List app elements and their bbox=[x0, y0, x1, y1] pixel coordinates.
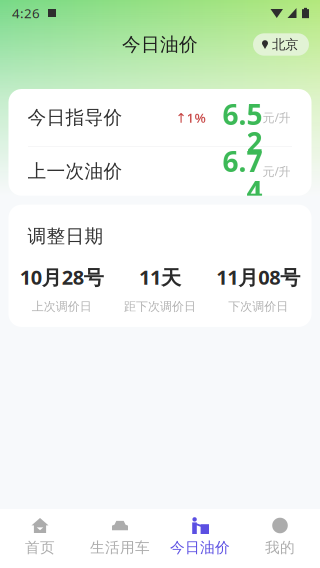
staticText: 6.7 bbox=[222, 142, 262, 180]
staticText: 首页 bbox=[25, 538, 55, 556]
staticText: 北京 bbox=[272, 36, 298, 53]
staticText: 上一次油价 bbox=[27, 160, 122, 183]
staticText: 下次调价日 bbox=[228, 299, 288, 314]
staticText: 元/升 bbox=[262, 163, 290, 179]
staticText: 11月08号 bbox=[216, 264, 300, 290]
staticText: 今日油价 bbox=[122, 33, 198, 56]
staticText: 生活用车 bbox=[90, 538, 150, 556]
staticText: 今日指导价 bbox=[27, 106, 122, 129]
button[interactable]: 我的 bbox=[240, 507, 320, 568]
button[interactable]: 首页 bbox=[0, 507, 80, 568]
button[interactable]: 北京 bbox=[253, 33, 309, 56]
button[interactable]: 今日油价 bbox=[160, 507, 240, 568]
staticText: 上次调价日 bbox=[32, 299, 92, 314]
staticText: 4:26 bbox=[12, 4, 40, 22]
staticText: 我的 bbox=[265, 538, 295, 556]
staticText: 今日油价 bbox=[170, 538, 230, 556]
staticText: 2 bbox=[246, 123, 262, 161]
staticText: 6.5 bbox=[222, 95, 262, 133]
button[interactable]: 生活用车 bbox=[80, 507, 160, 568]
staticText: 4 bbox=[246, 171, 262, 209]
staticText: ↑1% bbox=[175, 109, 205, 126]
staticText: 距下次调价日 bbox=[124, 299, 196, 314]
staticText: 11天 bbox=[139, 264, 181, 290]
staticText: 元/升 bbox=[262, 109, 290, 125]
staticText: 调整日期 bbox=[27, 225, 103, 248]
staticText: 10月28号 bbox=[20, 264, 104, 290]
